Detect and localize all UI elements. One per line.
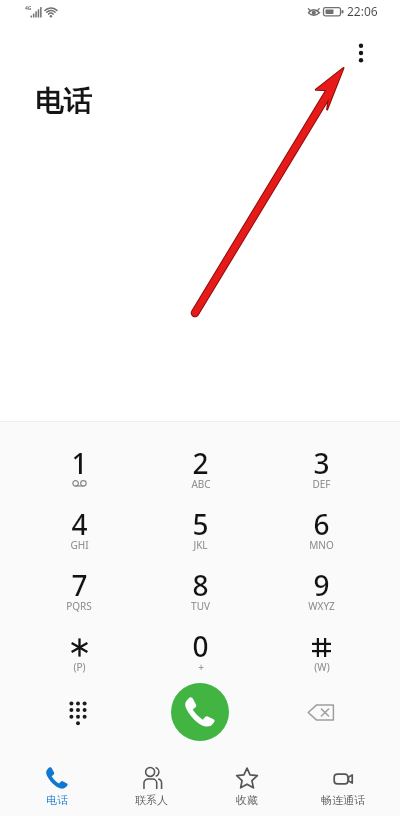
staticText: PQRS bbox=[66, 599, 92, 613]
button[interactable]: 电话 bbox=[9, 748, 104, 816]
button[interactable]: Hide dialpad bbox=[56, 690, 100, 734]
staticText: 电话 bbox=[46, 793, 68, 807]
staticText: DEF bbox=[312, 477, 331, 491]
staticText: 4G bbox=[25, 5, 32, 12]
staticText: + bbox=[198, 660, 204, 674]
button[interactable]: 1 bbox=[18, 444, 140, 505]
button[interactable]: (P) bbox=[18, 627, 140, 688]
staticText: 3 bbox=[313, 444, 330, 482]
button[interactable]: Call bbox=[171, 683, 229, 741]
button[interactable]: 4 bbox=[18, 505, 140, 566]
staticText: MNO bbox=[309, 538, 334, 552]
staticText: ABC bbox=[191, 477, 211, 491]
staticText: 6 bbox=[313, 505, 330, 543]
button[interactable]: 畅连通话 bbox=[295, 748, 391, 816]
staticText: 5 bbox=[192, 505, 209, 543]
staticText: 畅连通话 bbox=[321, 793, 365, 807]
staticText: 0 bbox=[192, 627, 209, 665]
button[interactable]: 5 bbox=[140, 505, 261, 566]
staticText: 联系人 bbox=[135, 793, 168, 807]
staticText: (W) bbox=[314, 660, 330, 674]
button[interactable]: 2 bbox=[140, 444, 261, 505]
button[interactable]: 8 bbox=[140, 566, 261, 627]
button[interactable]: More options bbox=[339, 31, 383, 75]
button[interactable]: 0 bbox=[140, 627, 261, 688]
staticText: JKL bbox=[193, 538, 208, 552]
staticText: 电话 bbox=[35, 84, 92, 120]
button[interactable]: 9 bbox=[261, 566, 382, 627]
button[interactable]: 6 bbox=[261, 505, 382, 566]
button[interactable]: 3 bbox=[261, 444, 382, 505]
button[interactable]: 收藏 bbox=[199, 748, 295, 816]
staticText: WXYZ bbox=[308, 599, 335, 613]
button[interactable]: 联系人 bbox=[104, 748, 199, 816]
staticText: 7 bbox=[71, 566, 88, 604]
staticText: 1 bbox=[71, 444, 88, 482]
staticText: 收藏 bbox=[236, 793, 258, 807]
staticText: (P) bbox=[73, 660, 86, 674]
staticText: 9 bbox=[313, 566, 330, 604]
staticText: 8 bbox=[192, 566, 209, 604]
staticText: GHI bbox=[70, 538, 89, 552]
staticText: TUV bbox=[191, 599, 210, 613]
staticText: 22:06 bbox=[347, 3, 378, 19]
staticText: 4 bbox=[71, 505, 88, 543]
button[interactable]: Backspace bbox=[300, 690, 344, 734]
button[interactable]: 7 bbox=[18, 566, 140, 627]
button[interactable]: (W) bbox=[261, 627, 382, 688]
staticText: 2 bbox=[192, 444, 209, 482]
